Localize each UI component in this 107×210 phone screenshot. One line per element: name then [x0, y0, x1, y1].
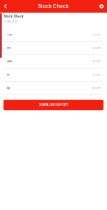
staticText: Shoe — [6, 47, 10, 49]
staticText: Hat — [6, 74, 9, 76]
staticText: 80 Item — [92, 60, 100, 63]
button[interactable]: Settings — [96, 0, 107, 13]
staticText: DOWNLOAD REPORT — [38, 103, 68, 107]
staticText: Jacket — [6, 60, 12, 63]
staticText: 50 Item — [92, 73, 100, 76]
button[interactable]: Bag — [3, 82, 103, 95]
button[interactable]: Jacket — [3, 55, 103, 68]
button[interactable]: Hat — [3, 68, 103, 82]
staticText: 200 Item — [91, 87, 100, 89]
button[interactable]: T-Shirt — [3, 28, 103, 42]
staticText: 50 Item — [92, 47, 100, 49]
staticText: 50 Item — [92, 33, 100, 36]
staticText: Stock Check — [38, 3, 69, 9]
staticText: 11 Mar 2022 — [4, 20, 17, 23]
button[interactable]: DOWNLOAD REPORT — [3, 100, 103, 110]
staticText: Stock Check — [4, 15, 24, 18]
staticText: T-Shirt — [6, 34, 12, 36]
staticText: Bag — [6, 87, 9, 89]
button[interactable]: Shoe — [3, 42, 103, 55]
button[interactable]: Back — [0, 0, 11, 13]
